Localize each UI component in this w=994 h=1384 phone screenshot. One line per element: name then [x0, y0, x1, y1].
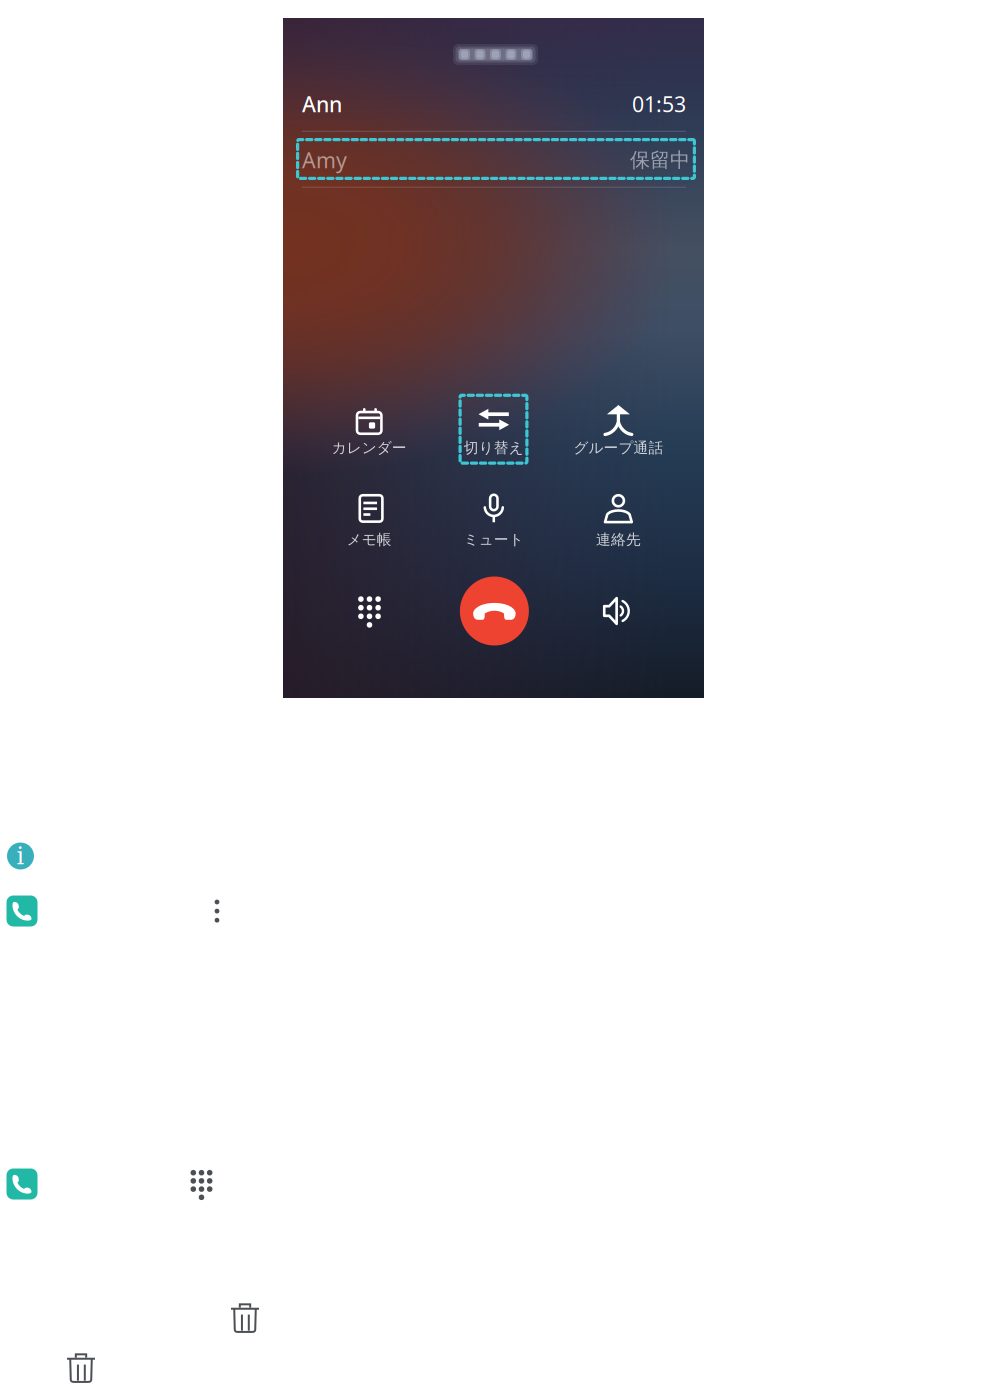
button[interactable]: 切り替え: [432, 404, 556, 462]
button[interactable]: Phone: [6, 1168, 37, 1199]
button[interactable]: More options: [215, 890, 219, 913]
staticText: 切り替え: [464, 439, 524, 457]
staticText: ミュート: [464, 530, 524, 548]
staticText: Ann: [302, 90, 342, 118]
staticText: 保留中: [630, 148, 690, 172]
button[interactable]: Phone: [6, 895, 37, 926]
button[interactable]: Keypad: [190, 1170, 212, 1200]
button[interactable]: メモ帳: [307, 492, 431, 550]
staticText: メモ帳: [347, 530, 392, 548]
button[interactable]: Delete: [67, 1352, 95, 1383]
staticText: i: [16, 842, 24, 870]
staticText: 01:53: [632, 90, 686, 118]
staticText: カレンダー: [332, 439, 407, 457]
staticText: 連絡先: [596, 530, 641, 548]
button[interactable]: Keypad: [341, 584, 397, 640]
button[interactable]: カレンダー: [307, 404, 431, 462]
staticText: グループ通話: [573, 439, 663, 457]
staticText: Amy: [302, 146, 347, 174]
button[interactable]: End call: [460, 576, 529, 645]
button[interactable]: Delete: [231, 1302, 259, 1333]
button[interactable]: ミュート: [432, 492, 556, 550]
button[interactable]: 連絡先: [556, 492, 680, 550]
button[interactable]: グループ通話: [556, 404, 680, 462]
button[interactable]: Speaker: [590, 583, 646, 639]
button[interactable]: Information: [7, 842, 34, 869]
